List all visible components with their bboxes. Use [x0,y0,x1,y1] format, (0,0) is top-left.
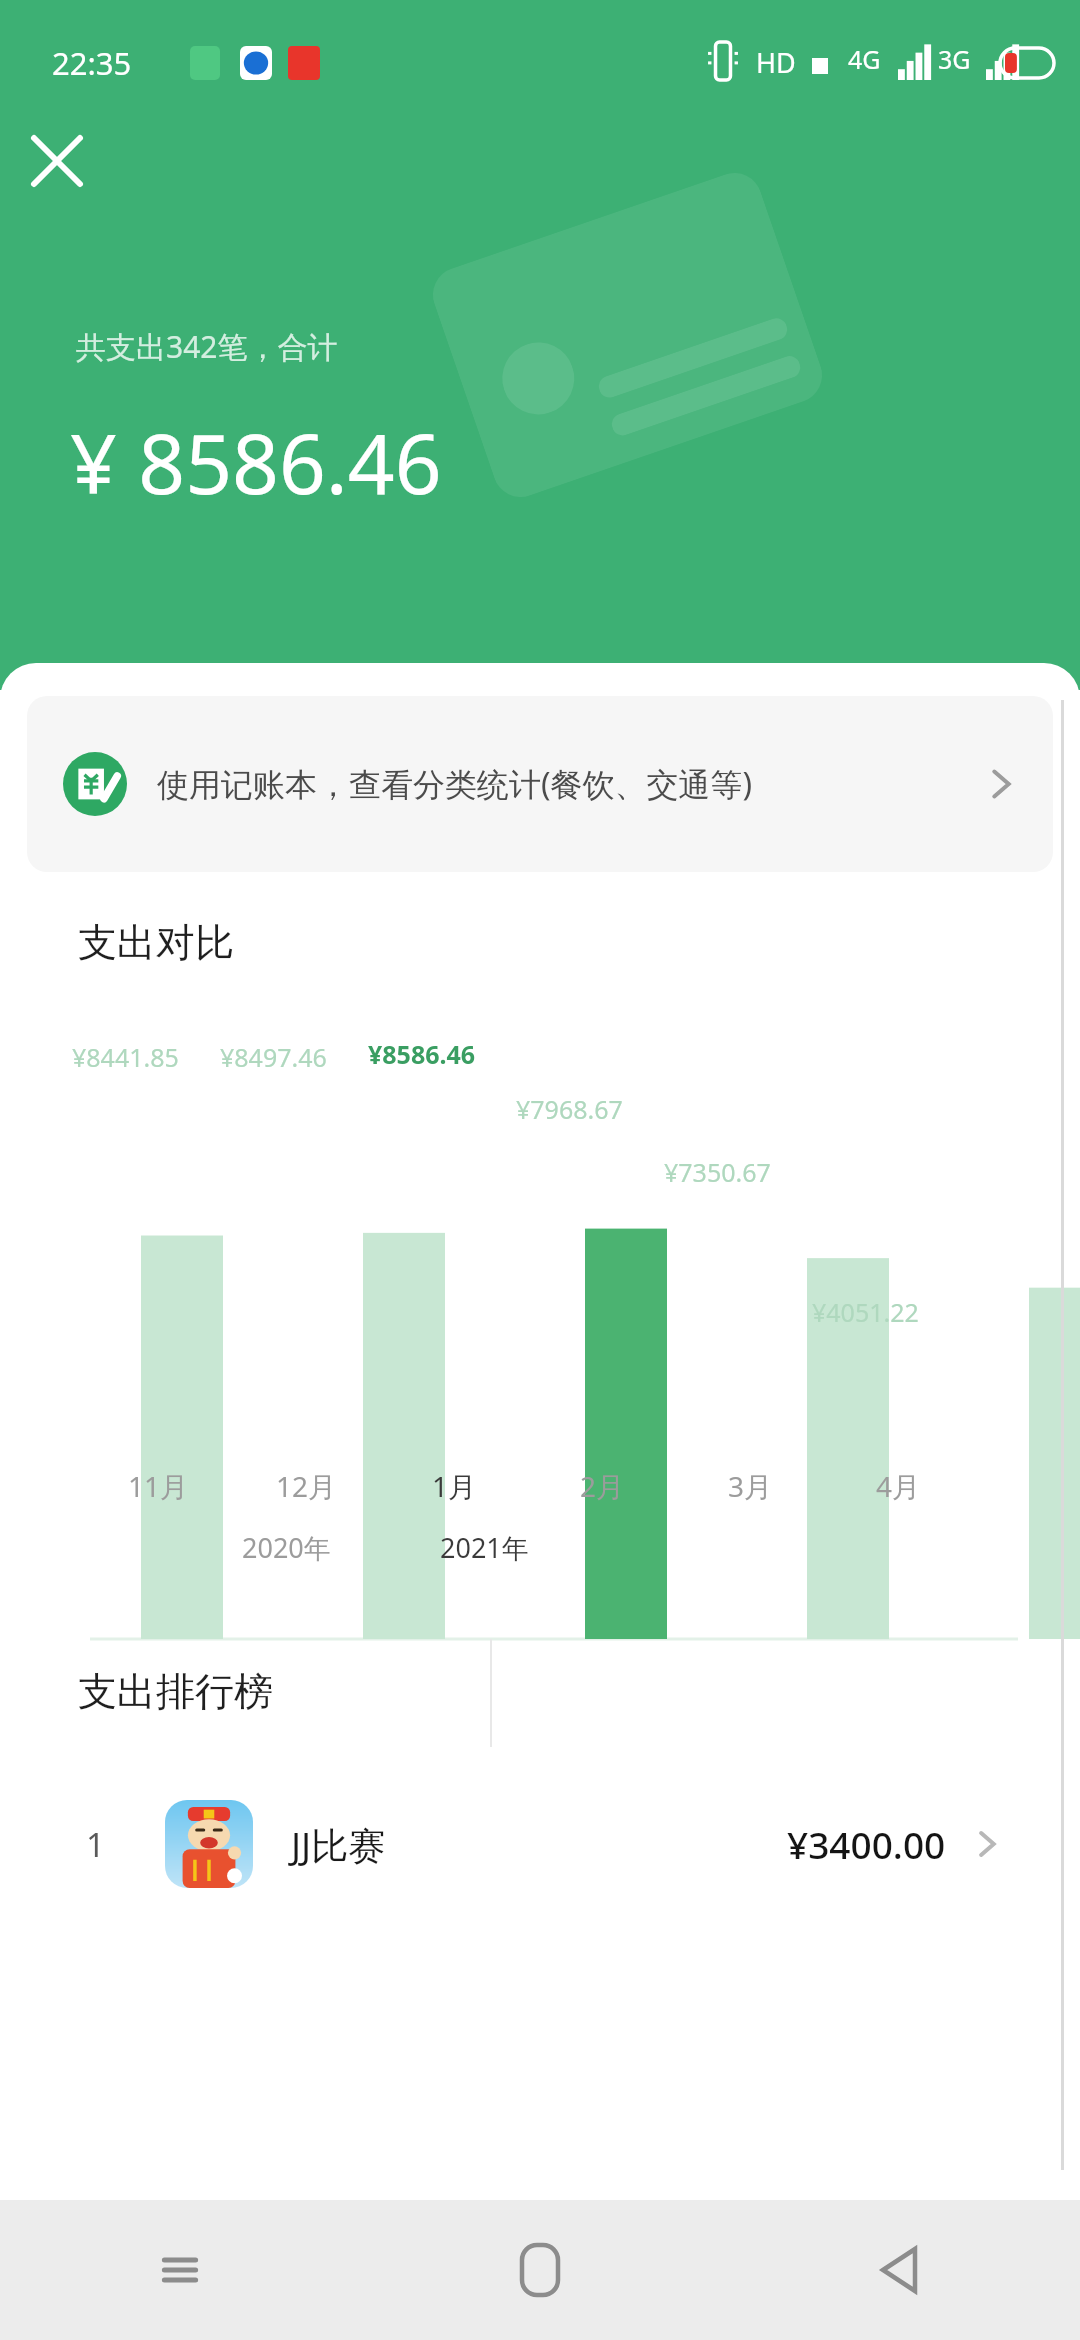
staticText: 2月 [562,1467,642,1505]
staticText: 1 [86,1822,105,1867]
button[interactable]: Recents [0,2200,360,2340]
staticText: ¥7350.67 [664,1155,771,1189]
staticText: 3G [938,42,971,76]
staticText: 12月 [266,1467,346,1505]
staticText: ¥7968.67 [516,1092,623,1126]
button[interactable]: Home [360,2200,720,2340]
staticText: 1月 [414,1467,494,1505]
staticText: ¥8441.85 [72,1040,179,1074]
staticText: 2020年 [242,1529,331,1566]
button[interactable]: Close [14,118,100,204]
staticText: ¥3400.00 [787,1819,946,1869]
staticText: ¥8497.46 [220,1040,327,1074]
staticText: ¥ 8586.46 [70,406,442,518]
staticText: 11月 [118,1467,198,1505]
staticText: HD [756,44,796,81]
staticText: 22:35 [52,42,132,84]
button[interactable]: Back [720,2200,1080,2340]
staticText: 4月 [858,1467,938,1505]
staticText: 支出对比 [78,918,234,967]
staticText: 共支出342笔，合计 [76,326,338,367]
staticText: 4G [848,42,881,76]
staticText: 使用记账本，查看分类统计(餐饮、交通等) [157,762,963,806]
staticText: ¥4051.22 [812,1295,919,1329]
staticText: 支出排行榜 [78,1667,273,1716]
staticText: 2021年 [440,1529,529,1566]
staticText: JJ比赛 [291,1819,386,1870]
staticText: ¥8586.46 [368,1037,476,1071]
button[interactable]: 1 [0,1774,1080,1914]
staticText: 3月 [710,1467,790,1505]
button[interactable]: 使用记账本，查看分类统计(餐饮、交通等) [27,696,1053,872]
